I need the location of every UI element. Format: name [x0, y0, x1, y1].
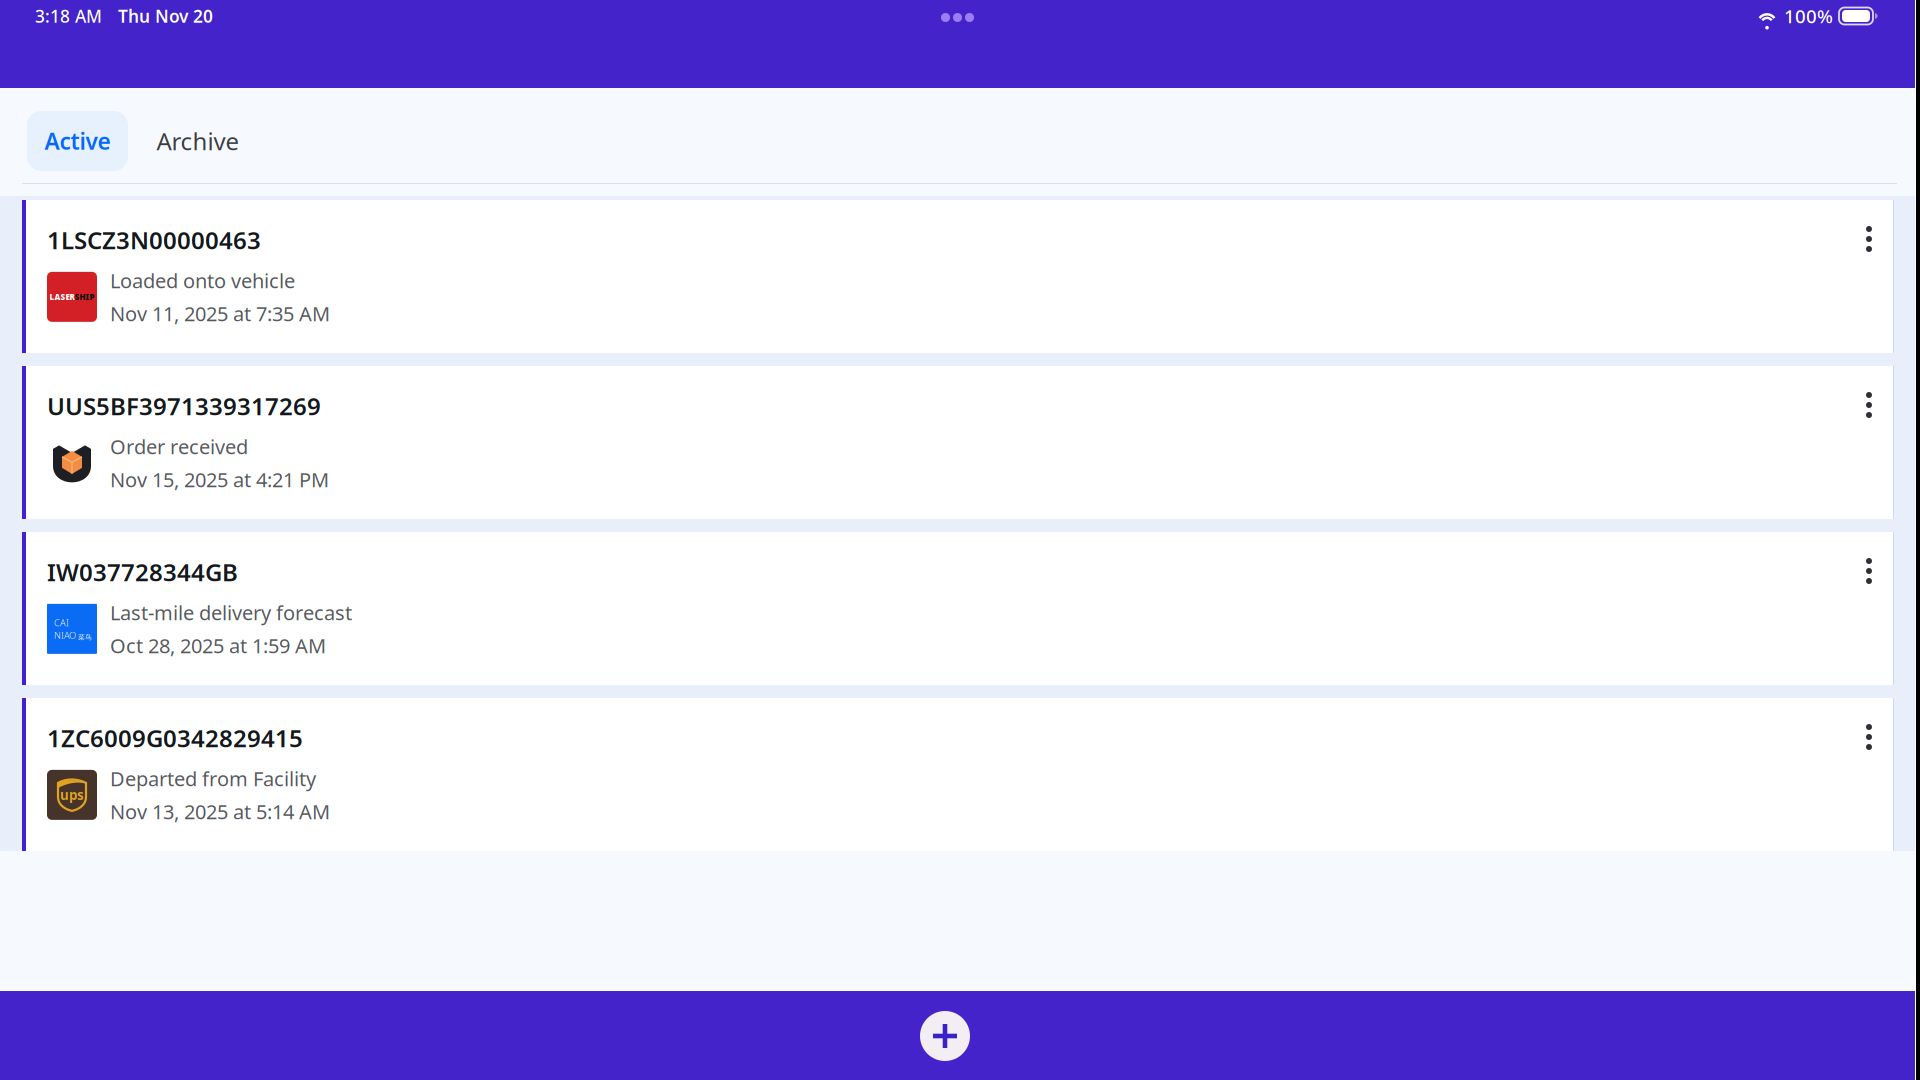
staticText: Nov 15, 2025 at 4:21 PM: [110, 466, 329, 493]
staticText: Order received: [110, 433, 248, 460]
button[interactable]: More options: [1850, 698, 1894, 851]
button[interactable]: UUS5BF3971339317269: [22, 366, 1894, 519]
staticText: Active: [44, 126, 110, 156]
button[interactable]: 1LSCZ3N00000463: [22, 200, 1894, 353]
staticText: 1ZC6009G0342829415: [47, 722, 303, 754]
staticText: IW037728344GB: [47, 556, 238, 588]
staticText: Nov 13, 2025 at 5:14 AM: [110, 798, 330, 825]
staticText: Thu Nov 20: [118, 4, 213, 27]
button[interactable]: Archive: [128, 111, 265, 171]
staticText: Last-mile delivery forecast: [110, 599, 352, 626]
staticText: CAI: [54, 616, 69, 629]
staticText: Oct 28, 2025 at 1:59 AM: [110, 632, 326, 659]
staticText: Nov 11, 2025 at 7:35 AM: [110, 300, 330, 327]
staticText: Loaded onto vehicle: [110, 267, 295, 294]
staticText: 菜鸟: [78, 633, 92, 641]
staticText: UUS5BF3971339317269: [47, 390, 321, 422]
staticText: NIAO: [54, 629, 76, 641]
staticText: 3:18 AM: [35, 4, 102, 27]
staticText: LASER: [49, 292, 74, 302]
button[interactable]: More options: [1850, 532, 1894, 685]
staticText: 100%: [1784, 4, 1833, 28]
button[interactable]: Add package: [920, 1011, 970, 1061]
button[interactable]: 1ZC6009G0342829415: [22, 698, 1894, 851]
staticText: Departed from Facility: [110, 765, 316, 792]
staticText: Archive: [156, 125, 239, 157]
staticText: 1LSCZ3N00000463: [47, 224, 261, 256]
button[interactable]: More options: [1850, 366, 1894, 519]
button[interactable]: More options: [1850, 200, 1894, 353]
button[interactable]: Active: [27, 111, 128, 171]
button[interactable]: IW037728344GB: [22, 532, 1894, 685]
staticText: ups: [60, 786, 84, 804]
staticText: SHIP: [74, 292, 94, 302]
